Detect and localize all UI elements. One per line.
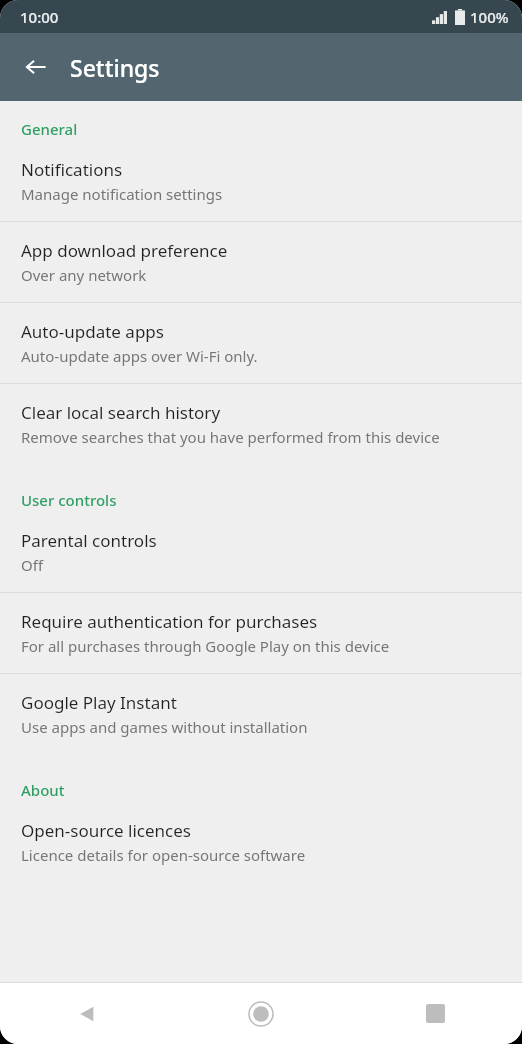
- staticText: 10:00: [20, 7, 59, 27]
- staticText: Remove searches that you have performed …: [21, 427, 440, 447]
- staticText: Require authentication for purchases: [21, 610, 318, 633]
- button[interactable]: Open-source licences: [0, 802, 522, 882]
- staticText: Auto-update apps over Wi-Fi only.: [21, 346, 258, 366]
- staticText: Over any network: [21, 265, 147, 285]
- staticText: Notifications: [21, 158, 123, 181]
- button[interactable]: Back: [0, 983, 174, 1044]
- button[interactable]: Back: [12, 43, 60, 91]
- staticText: Use apps and games without installation: [21, 717, 308, 737]
- staticText: About: [21, 780, 522, 800]
- button[interactable]: App download preference: [0, 222, 522, 302]
- staticText: Off: [21, 555, 44, 575]
- staticText: Manage notification settings: [21, 184, 223, 204]
- staticText: App download preference: [21, 239, 228, 262]
- button[interactable]: Clear local search history: [0, 384, 522, 464]
- staticText: Licence details for open-source software: [21, 845, 306, 865]
- staticText: Open-source licences: [21, 819, 191, 842]
- staticText: For all purchases through Google Play on…: [21, 636, 390, 656]
- button[interactable]: Auto-update apps: [0, 303, 522, 383]
- button[interactable]: Parental controls: [0, 512, 522, 592]
- button[interactable]: Notifications: [0, 141, 522, 221]
- staticText: User controls: [21, 490, 522, 510]
- button[interactable]: Home: [174, 983, 348, 1044]
- staticText: Clear local search history: [21, 401, 221, 424]
- button[interactable]: Recent apps: [348, 983, 522, 1044]
- button[interactable]: Require authentication for purchases: [0, 593, 522, 673]
- staticText: Parental controls: [21, 529, 157, 552]
- staticText: General: [21, 119, 522, 139]
- staticText: Auto-update apps: [21, 320, 164, 343]
- staticText: 100%: [470, 7, 509, 27]
- staticText: Settings: [70, 52, 160, 83]
- staticText: Google Play Instant: [21, 691, 177, 714]
- button[interactable]: Google Play Instant: [0, 674, 522, 754]
